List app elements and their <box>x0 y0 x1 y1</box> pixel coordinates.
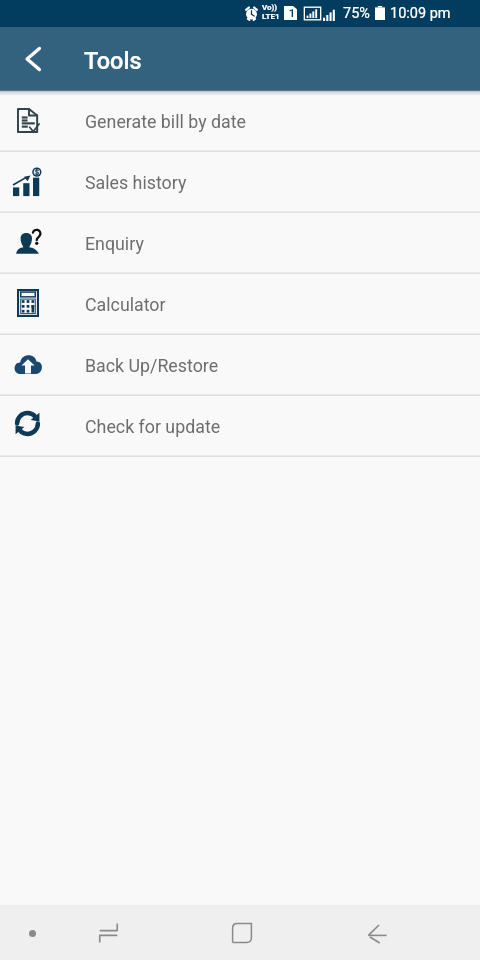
staticText: Tools <box>84 47 142 75</box>
staticText: Generate bill by date <box>85 111 246 132</box>
staticText: Enquiry <box>85 233 144 254</box>
button[interactable]: Check for update <box>0 396 480 455</box>
button[interactable]: Back <box>353 909 401 957</box>
staticText: Calculator <box>85 294 166 315</box>
button[interactable]: Enquiry <box>0 213 480 272</box>
staticText: Check for update <box>85 416 221 437</box>
button[interactable]: Back <box>0 27 64 89</box>
staticText: 10:09 pm <box>390 5 451 22</box>
staticText: LTE1 <box>262 12 280 21</box>
staticText: 75% <box>343 5 370 22</box>
button[interactable]: Sales history <box>0 152 480 211</box>
staticText: Vo)) <box>262 3 278 12</box>
button[interactable]: Home <box>218 909 266 957</box>
staticText: Back Up/Restore <box>85 355 219 376</box>
staticText: 1 <box>287 7 297 20</box>
staticText: Sales history <box>85 172 187 193</box>
button[interactable]: Recent apps <box>84 909 132 957</box>
button[interactable]: Calculator <box>0 274 480 333</box>
button[interactable]: Menu <box>8 909 56 957</box>
button[interactable]: Generate bill by date <box>0 91 480 150</box>
button[interactable]: Back Up/Restore <box>0 335 480 394</box>
